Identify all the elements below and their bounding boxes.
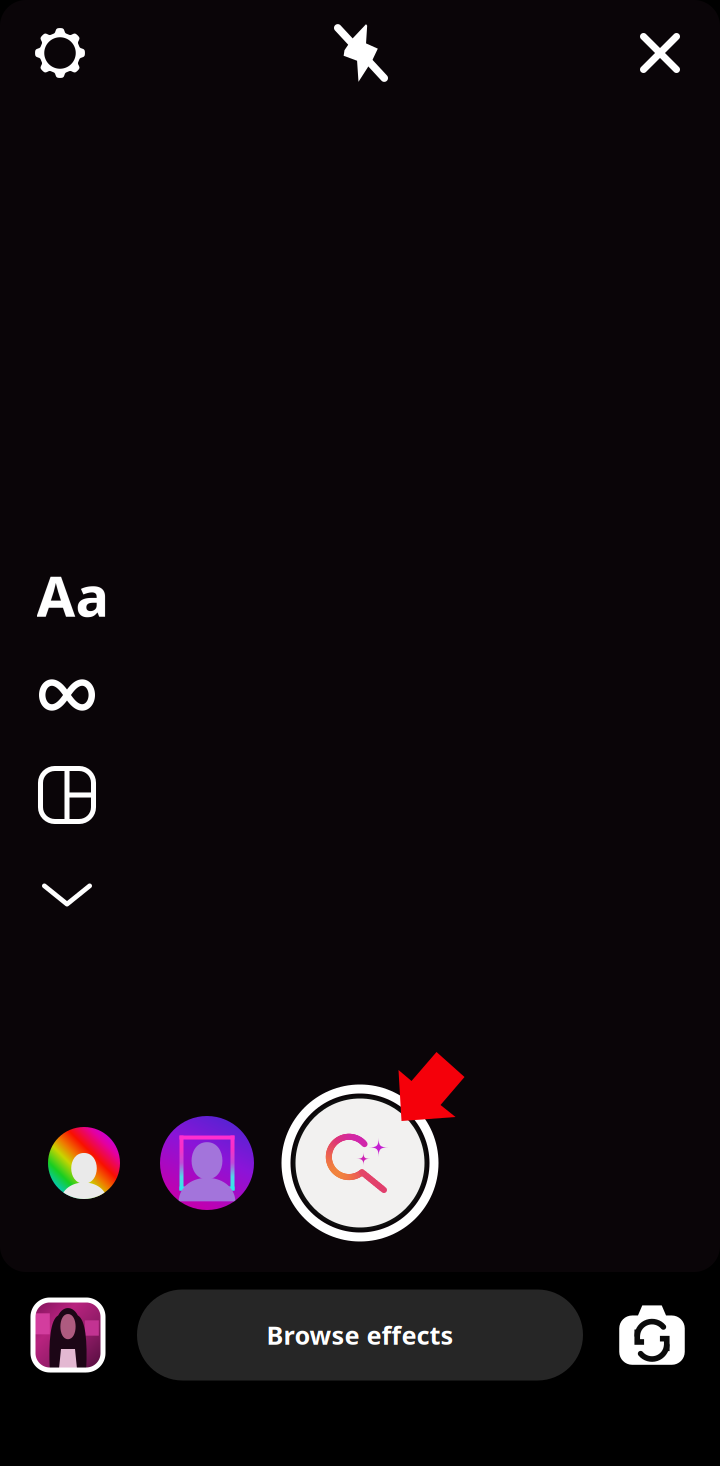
button[interactable]: Camera settings (14, 7, 106, 99)
button[interactable]: Camera roll (18, 1285, 118, 1385)
button[interactable]: No effect (30, 1109, 138, 1217)
button[interactable]: Browse effects (137, 1289, 583, 1380)
staticText: Browse effects (266, 1318, 453, 1352)
button[interactable]: Text (27, 549, 119, 641)
button[interactable]: Flash off (315, 7, 407, 99)
button[interactable]: Boomerang (21, 649, 113, 741)
button[interactable]: More options (21, 849, 113, 941)
button[interactable]: Switch camera (602, 1286, 702, 1386)
button[interactable]: Portrait effect (152, 1108, 262, 1218)
button[interactable]: Close (614, 7, 706, 99)
button[interactable]: Browse effects (280, 1083, 440, 1243)
staticText: Aa (36, 558, 109, 632)
button[interactable]: Layout (21, 749, 113, 841)
